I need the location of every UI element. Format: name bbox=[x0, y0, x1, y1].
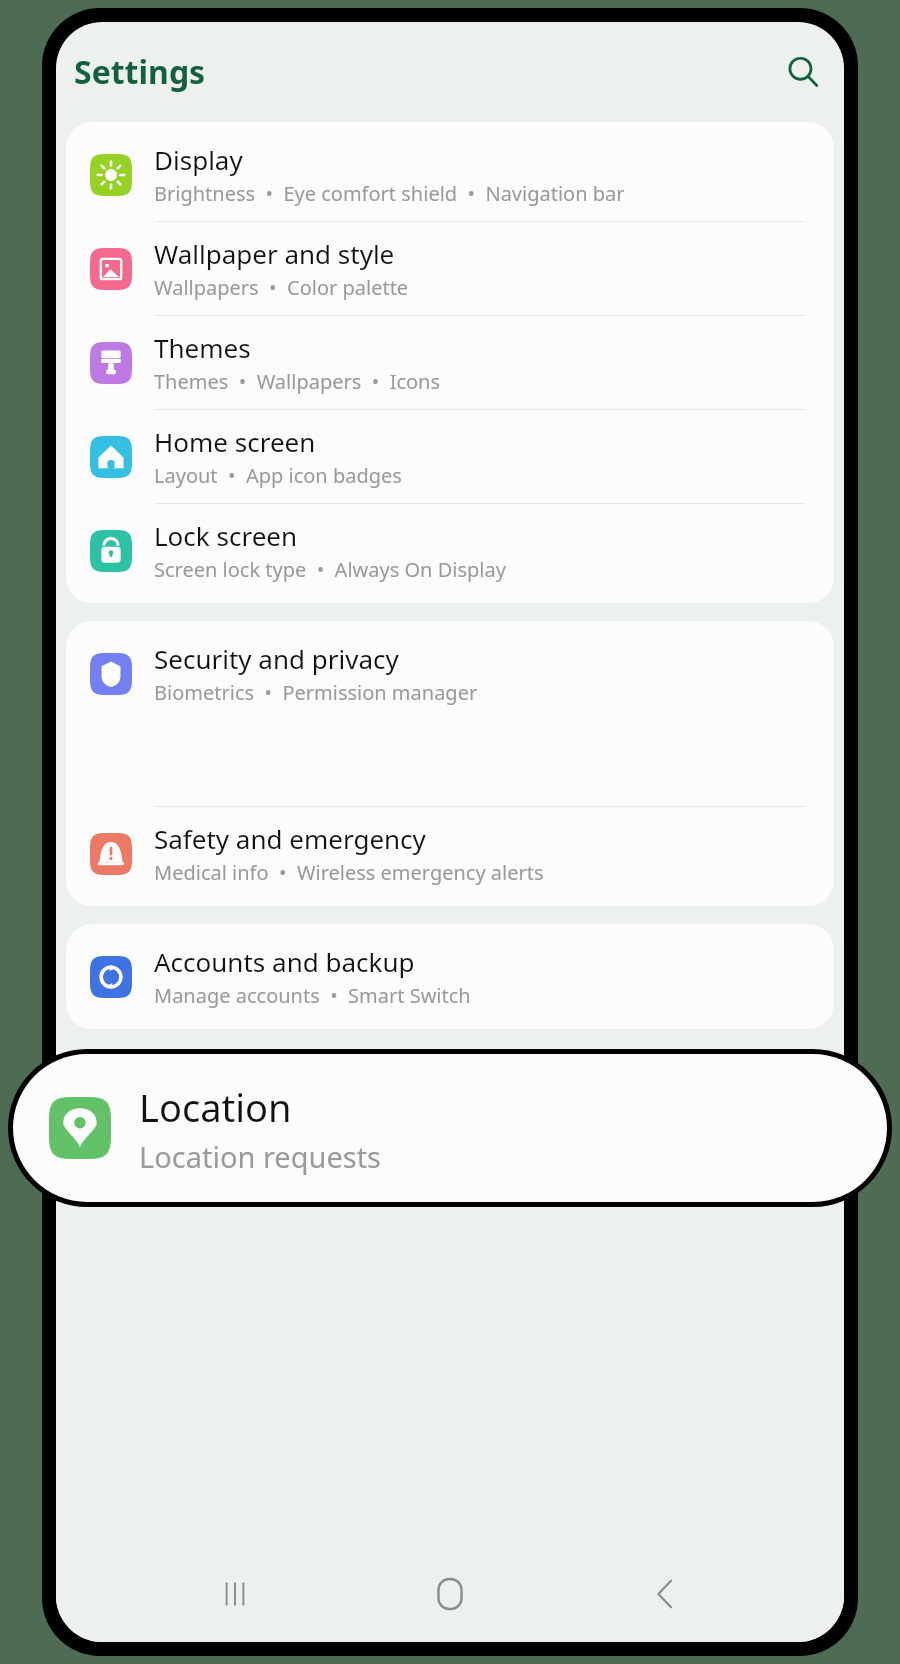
staticText: Layout • App icon badges bbox=[154, 462, 402, 489]
button[interactable]: Wallpaper and style bbox=[66, 222, 834, 315]
staticText: Settings bbox=[74, 50, 206, 94]
staticText: Display bbox=[154, 142, 243, 177]
staticText: Wallpapers • Color palette bbox=[154, 274, 409, 301]
staticText: Themes bbox=[154, 330, 251, 365]
staticText: Lock screen bbox=[154, 518, 298, 553]
staticText: Security and privacy bbox=[154, 641, 399, 676]
staticText: Location bbox=[139, 1081, 292, 1133]
staticText: Home screen bbox=[154, 424, 316, 459]
button[interactable]: Search bbox=[778, 47, 828, 97]
button[interactable]: Location bbox=[13, 1054, 887, 1202]
staticText: Wallpaper and style bbox=[154, 236, 395, 271]
staticText: Themes • Wallpapers • Icons bbox=[154, 368, 441, 395]
staticText: Brightness • Eye comfort shield • Naviga… bbox=[154, 180, 625, 207]
button[interactable]: Lock screen bbox=[66, 504, 834, 597]
button[interactable]: Recents bbox=[199, 1558, 271, 1630]
staticText: Medical info • Wireless emergency alerts bbox=[154, 859, 544, 886]
staticText: Safety and emergency bbox=[154, 821, 426, 856]
button[interactable]: Safety and emergency bbox=[66, 807, 834, 900]
staticText: Manage accounts • Smart Switch bbox=[154, 982, 471, 1009]
button[interactable]: Display bbox=[66, 128, 834, 221]
button[interactable]: Home bbox=[414, 1558, 486, 1630]
button[interactable]: Home screen bbox=[66, 410, 834, 503]
button[interactable]: Security and privacy bbox=[66, 627, 834, 720]
staticText: Screen lock type • Always On Display bbox=[154, 556, 506, 583]
button[interactable]: Back bbox=[629, 1558, 701, 1630]
button[interactable]: Themes bbox=[66, 316, 834, 409]
staticText: Accounts and backup bbox=[154, 944, 415, 979]
staticText: Biometrics • Permission manager bbox=[154, 679, 478, 706]
button[interactable]: Accounts and backup bbox=[66, 930, 834, 1023]
staticText: Location requests bbox=[139, 1137, 382, 1176]
